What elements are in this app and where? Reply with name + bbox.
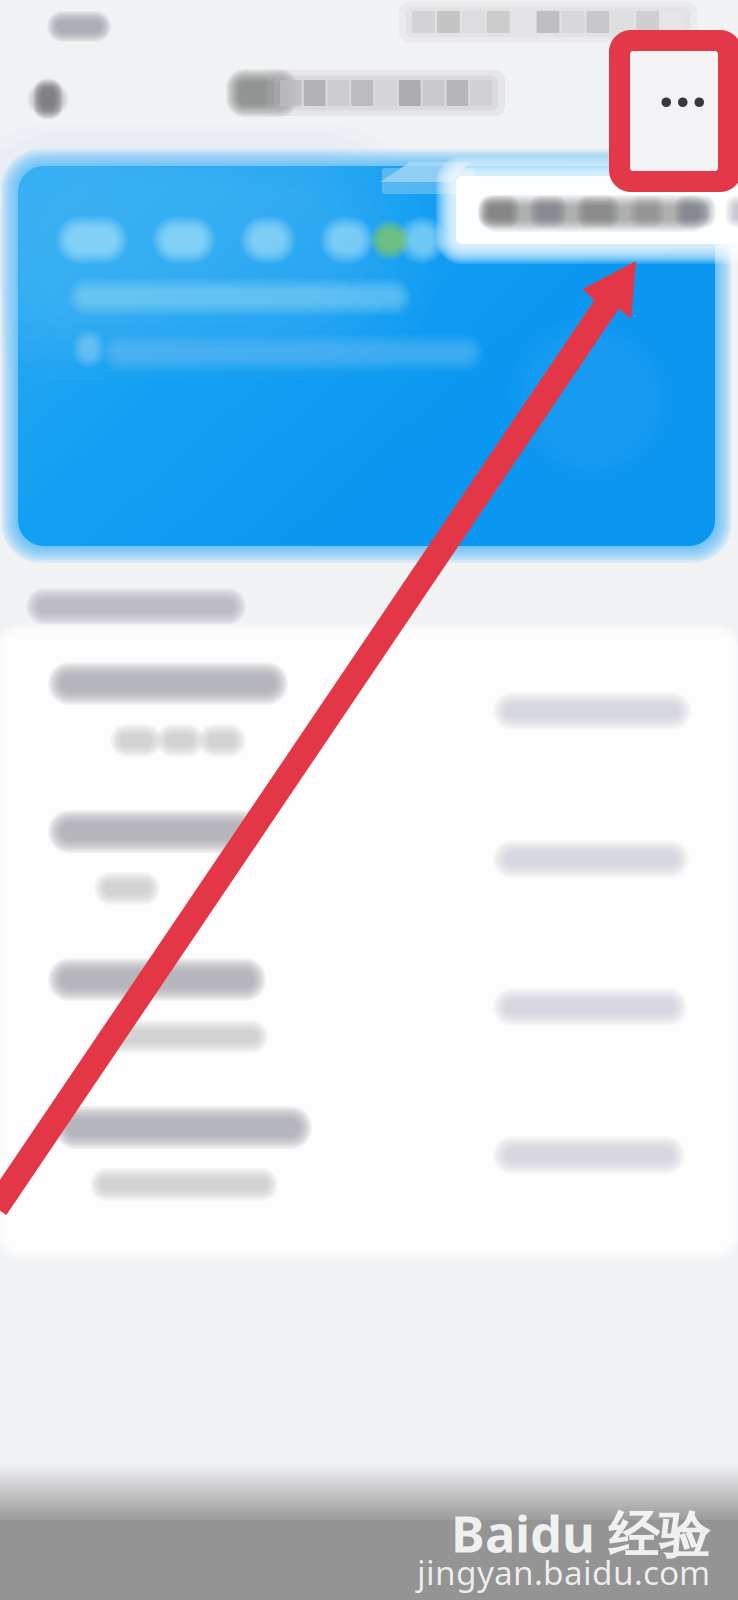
staticText: Baidu 经验 (451, 1499, 710, 1567)
button[interactable] (6, 1084, 730, 1231)
button[interactable] (6, 936, 730, 1083)
button[interactable] (6, 788, 730, 935)
button[interactable]: Banner (18, 166, 715, 546)
button[interactable]: Menu item (452, 172, 738, 248)
button[interactable]: More options (609, 30, 738, 192)
button[interactable]: Back (17, 68, 79, 130)
staticText: jingyan.baidu.com (417, 1550, 710, 1594)
button[interactable] (6, 640, 730, 787)
